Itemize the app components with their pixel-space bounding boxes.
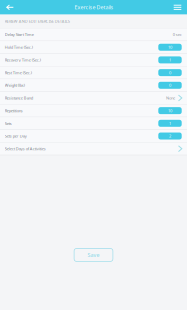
staticText: 10 [168, 108, 172, 113]
staticText: Sets per Day [5, 133, 27, 139]
staticText: Recovery Time (Sec.) [5, 57, 41, 63]
button[interactable]: Recovery Time (Sec.) [0, 54, 187, 67]
button[interactable]: Sets [0, 117, 187, 130]
staticText: Exercise Details [74, 4, 113, 11]
staticText: Resistance Band [5, 95, 33, 101]
button[interactable]: Back [0, 0, 20, 15]
button[interactable]: Menu [168, 0, 187, 15]
button[interactable]: Select Days of Activities [0, 143, 187, 155]
button[interactable]: Sets per Day [0, 130, 187, 143]
staticText: Select Days of Activities [5, 146, 46, 151]
staticText: Delay Start Time [5, 32, 34, 37]
staticText: 10 [168, 45, 172, 50]
staticText: 0 [169, 83, 171, 88]
button[interactable]: Repetitions [0, 105, 187, 117]
staticText: 0 sec [173, 32, 182, 37]
staticText: 0 [169, 70, 171, 75]
staticText: Sets [5, 121, 12, 126]
staticText: 1 [169, 121, 171, 126]
staticText: 1 [169, 57, 171, 63]
staticText: Rest Time (Sec.) [5, 70, 32, 75]
staticText: Hold Time (Sec.) [5, 45, 33, 50]
staticText: REVIEW AND EDIT EXERCISE DETAILS [5, 19, 70, 24]
staticText: 2 [169, 133, 171, 139]
button[interactable]: Resistance Band [0, 92, 187, 105]
staticText: Repetitions [5, 108, 23, 113]
staticText: Weight (lbs) [5, 83, 25, 88]
button[interactable]: Save [74, 248, 113, 261]
button[interactable]: Hold Time (Sec.) [0, 41, 187, 54]
button[interactable]: Rest Time (Sec.) [0, 66, 187, 79]
staticText: None [166, 95, 175, 101]
button[interactable]: Weight (lbs) [0, 79, 187, 92]
staticText: Save [87, 251, 99, 258]
button[interactable]: Delay Start Time [0, 28, 187, 41]
